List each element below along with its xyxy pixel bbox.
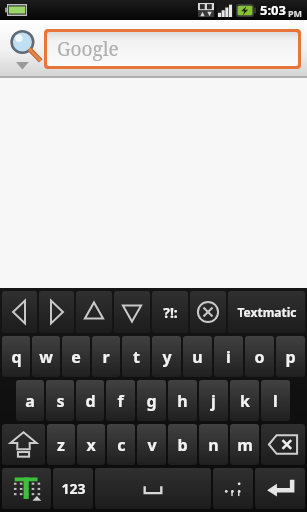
staticText: j — [211, 390, 216, 412]
staticText: q — [11, 346, 22, 368]
button[interactable]: w — [32, 336, 60, 377]
button[interactable]: v — [137, 424, 166, 465]
button[interactable]: g — [137, 380, 166, 421]
button[interactable]: h — [168, 380, 197, 421]
button[interactable]: s — [46, 380, 74, 421]
button[interactable]: l — [261, 380, 290, 421]
staticText: o — [254, 346, 265, 368]
button[interactable]: Previous — [2, 291, 37, 333]
button[interactable]: Up — [76, 291, 112, 333]
button[interactable]: e — [62, 336, 90, 377]
button[interactable]: a — [16, 380, 44, 421]
staticText: z — [57, 434, 65, 456]
button[interactable]: Search by voice options — [4, 22, 44, 76]
button[interactable]: k — [230, 380, 259, 421]
staticText: c — [117, 434, 126, 456]
button[interactable]: u — [183, 336, 212, 377]
staticText: l — [273, 390, 278, 412]
staticText: w — [39, 346, 53, 368]
button[interactable]: q — [2, 336, 30, 377]
staticText: ?!: — [163, 303, 178, 322]
staticText: t — [133, 346, 140, 368]
staticText: s — [56, 390, 65, 412]
staticText: PM — [288, 7, 303, 19]
button[interactable]: Enter — [255, 468, 305, 509]
button[interactable]: d — [76, 380, 104, 421]
staticText: Google — [57, 36, 119, 62]
button[interactable]: Next — [39, 291, 74, 333]
staticText: i — [226, 346, 231, 368]
staticText: k — [240, 390, 250, 412]
staticText: e — [71, 346, 81, 368]
button[interactable]: Google — [47, 32, 298, 66]
button[interactable]: i — [214, 336, 243, 377]
staticText: m — [237, 434, 253, 456]
button[interactable]: z — [47, 424, 75, 465]
staticText: u — [192, 346, 203, 368]
button[interactable]: x — [77, 424, 105, 465]
button[interactable]: b — [168, 424, 197, 465]
staticText: y — [162, 346, 172, 368]
staticText: n — [208, 434, 219, 456]
button[interactable]: o — [245, 336, 274, 377]
button[interactable]: Delete — [261, 424, 305, 465]
button[interactable]: y — [152, 336, 181, 377]
staticText: r — [102, 346, 110, 368]
button[interactable]: Space — [95, 468, 211, 509]
button[interactable]: ?!: — [152, 291, 188, 333]
staticText: g — [146, 390, 157, 412]
button[interactable]: j — [199, 380, 228, 421]
button[interactable]: 123 — [53, 468, 93, 509]
staticText: b — [177, 434, 188, 456]
staticText: h — [177, 390, 188, 412]
button[interactable]: c — [107, 424, 135, 465]
staticText: 5:03 — [260, 1, 286, 19]
button[interactable]: t — [122, 336, 150, 377]
button[interactable]: n — [199, 424, 228, 465]
staticText: Textmatic — [237, 304, 297, 320]
button[interactable]: p — [276, 336, 305, 377]
staticText: d — [85, 390, 96, 412]
button[interactable]: r — [92, 336, 120, 377]
button[interactable]: Shift — [2, 424, 45, 465]
staticText: v — [147, 434, 157, 456]
button[interactable]: Punctuation — [213, 468, 253, 509]
button[interactable]: Change keyboard — [2, 468, 51, 509]
staticText: a — [25, 390, 35, 412]
button[interactable]: f — [106, 380, 135, 421]
staticText: x — [86, 434, 96, 456]
button[interactable]: Clear — [190, 291, 226, 333]
button[interactable]: Down — [114, 291, 150, 333]
button[interactable]: m — [230, 424, 259, 465]
staticText: f — [117, 390, 124, 412]
staticText: p — [285, 346, 296, 368]
staticText: 123 — [61, 479, 86, 498]
button[interactable]: Textmatic — [228, 291, 305, 333]
